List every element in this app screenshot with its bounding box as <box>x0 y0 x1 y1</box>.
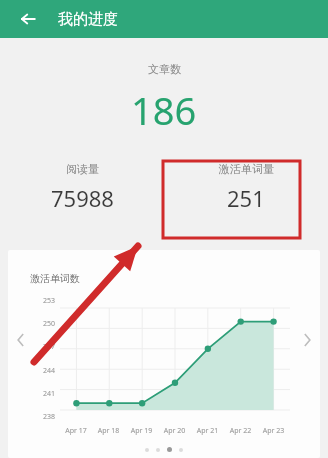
button[interactable]: Next week <box>294 327 320 353</box>
button[interactable]: Page 2 <box>156 448 160 452</box>
staticText: 75988 <box>51 183 114 213</box>
staticText: Apr 23 <box>257 426 290 436</box>
staticText: Apr 19 <box>125 426 158 436</box>
staticText: 251 <box>227 183 265 213</box>
staticText: Apr 18 <box>92 426 125 436</box>
button[interactable]: Page 3 <box>167 447 172 452</box>
staticText: 247 <box>43 342 56 352</box>
staticText: 186 <box>131 84 197 136</box>
button[interactable]: 激活单词量 <box>164 162 328 213</box>
staticText: 250 <box>43 319 56 329</box>
staticText: 阅读量 <box>66 162 99 176</box>
button[interactable]: Page 4 <box>179 448 183 452</box>
button[interactable]: Previous week <box>8 327 34 353</box>
staticText: 238 <box>43 412 56 422</box>
staticText: Apr 20 <box>158 426 191 436</box>
staticText: Apr 22 <box>224 426 257 436</box>
staticText: 文章数 <box>148 62 181 76</box>
button[interactable]: Back <box>14 5 42 33</box>
staticText: 253 <box>43 296 56 306</box>
staticText: Apr 21 <box>191 426 224 436</box>
staticText: 激活单词数 <box>30 272 80 285</box>
staticText: 244 <box>43 366 56 376</box>
staticText: 激活单词量 <box>219 162 274 176</box>
staticText: 我的进度 <box>58 10 118 29</box>
button[interactable]: 阅读量 <box>0 162 164 213</box>
staticText: Apr 17 <box>60 426 92 436</box>
staticText: 241 <box>43 389 56 399</box>
button[interactable]: Page 1 <box>145 448 149 452</box>
